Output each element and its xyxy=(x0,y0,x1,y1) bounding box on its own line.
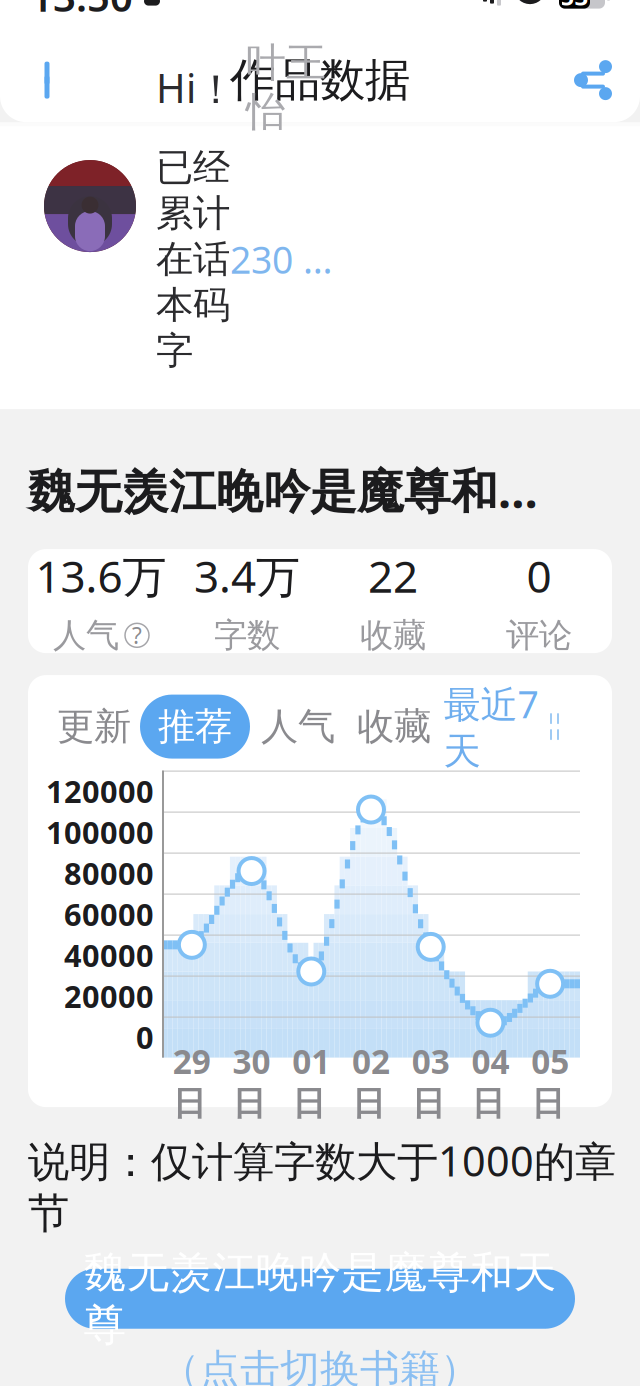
staticText: 已经累计在话本码字 xyxy=(156,145,230,374)
button[interactable]: 收藏 xyxy=(346,697,442,757)
staticText: 80000 xyxy=(64,853,154,893)
staticText: 推荐 xyxy=(158,704,232,750)
staticText: 04日 xyxy=(471,1039,509,1124)
staticText: 收藏 xyxy=(357,704,431,750)
staticText: 评论 xyxy=(506,615,572,656)
staticText: 5.7万 xyxy=(57,410,172,474)
staticText: 02日 xyxy=(352,1039,390,1124)
staticText: 13.6万 xyxy=(35,546,166,605)
button[interactable]: 最近7 天 xyxy=(442,689,564,765)
staticText: 最近7 天 xyxy=(443,679,538,774)
staticText: 人气 xyxy=(261,704,335,750)
staticText: ? xyxy=(132,620,142,650)
staticText: 13:50 xyxy=(30,0,133,23)
button[interactable]: 更新 xyxy=(48,697,140,757)
button[interactable]: 返回 xyxy=(10,43,84,117)
staticText: 收藏 xyxy=(360,615,426,656)
staticText: 人气 xyxy=(53,615,119,656)
staticText: 53 xyxy=(560,0,588,12)
staticText: 3.4万 xyxy=(194,546,300,605)
staticText: 27.3万 xyxy=(454,410,596,474)
staticText: 22 xyxy=(368,546,418,605)
staticText: 100000 xyxy=(46,812,154,852)
staticText: 60000 xyxy=(64,894,154,934)
staticText: 收藏总人数 xyxy=(240,486,400,525)
staticText: 作品数据 xyxy=(230,52,410,108)
staticText: 魏无羡江晚吟是魔尊和… xyxy=(28,459,538,521)
staticText: 70 xyxy=(293,410,347,474)
staticText: 03日 xyxy=(412,1039,450,1124)
staticText: 字数 xyxy=(214,615,280,656)
staticText: （点击切换书籍） xyxy=(160,1345,480,1386)
staticText: 说明：仅计算字数大于1000的章节 xyxy=(28,1133,616,1239)
button[interactable]: 分享 xyxy=(556,43,630,117)
staticText: 魏无羡江晚吟是魔尊和天尊 xyxy=(83,1246,556,1351)
staticText: 40000 xyxy=(64,935,154,975)
button[interactable]: （点击切换书籍） xyxy=(140,1339,500,1386)
staticText: 230 … xyxy=(230,234,333,284)
staticText: 01日 xyxy=(292,1039,330,1124)
staticText: 0 xyxy=(526,546,551,605)
staticText: 叶王怡 xyxy=(246,38,326,137)
staticText: 更新总字数 xyxy=(35,486,195,525)
staticText: 更新 xyxy=(57,704,131,750)
staticText: 05日 xyxy=(531,1039,569,1124)
staticText: 29日 xyxy=(173,1039,211,1124)
staticText: 累计阅读数 xyxy=(445,486,605,525)
button[interactable]: 推荐 xyxy=(140,695,250,759)
button[interactable]: 人气 xyxy=(250,697,346,757)
staticText: Hi！ xyxy=(156,61,236,114)
staticText: 120000 xyxy=(46,771,154,811)
staticText: 30日 xyxy=(233,1039,271,1124)
staticText: 0 xyxy=(136,1017,154,1057)
button[interactable]: 魏无羡江晚吟是魔尊和天尊 xyxy=(65,1269,575,1329)
staticText: 20000 xyxy=(64,976,154,1016)
